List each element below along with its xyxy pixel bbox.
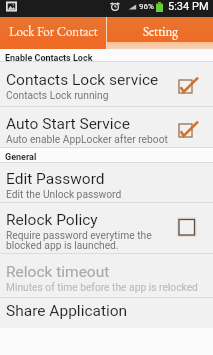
button[interactable]: Enabled [179, 77, 204, 94]
staticText: Enable Contacts Lock [5, 53, 93, 61]
staticText: Require password everytime the blocked a… [6, 229, 152, 252]
staticText: Auto Start Service [6, 115, 130, 133]
button[interactable]: Setting [107, 17, 213, 42]
button[interactable]: Relock Policy [0, 203, 213, 253]
button[interactable]: Lock For Contact [0, 17, 106, 42]
staticText: Edit the Unlock password [6, 188, 122, 200]
staticText: 5:34 PM [168, 0, 209, 13]
staticText: Relock timeout [6, 263, 110, 281]
button[interactable]: Contacts Lock service [0, 62, 213, 106]
staticText: Contacts Lock running [6, 89, 109, 101]
staticText: 96% [139, 2, 154, 11]
button[interactable]: Enabled [179, 121, 204, 138]
button[interactable]: Share Application [0, 298, 213, 328]
staticText: Lock For Contact [9, 23, 98, 40]
other: Gallery notification [6, 1, 17, 12]
button[interactable]: Auto Start Service [0, 107, 213, 147]
staticText: Contacts Lock service [6, 71, 159, 89]
staticText: Minutes of time before the app is relock… [6, 281, 198, 293]
staticText: Relock Policy [6, 211, 98, 229]
staticText: General [5, 152, 37, 162]
button[interactable]: Relock timeout [0, 254, 213, 297]
staticText: Setting [143, 23, 178, 40]
staticText: Auto enable AppLocker after reboot [6, 133, 168, 145]
button[interactable]: Disabled [179, 219, 204, 236]
staticText: Share Application [6, 302, 128, 320]
button[interactable]: Edit Password [0, 163, 213, 202]
staticText: Edit Password [6, 170, 105, 188]
